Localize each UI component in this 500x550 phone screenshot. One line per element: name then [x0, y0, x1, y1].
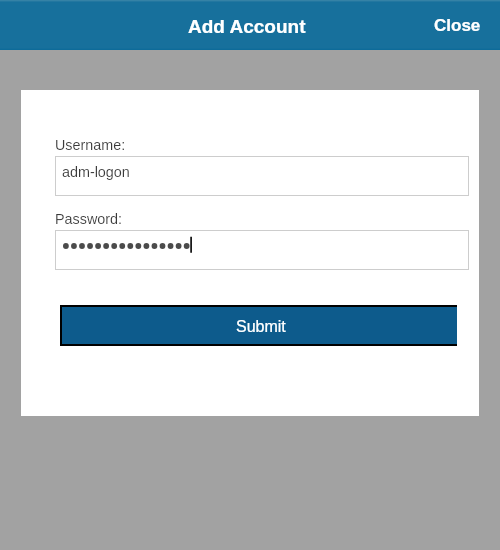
- button[interactable]: adm-logon: [55, 156, 469, 196]
- staticText: adm-logon: [62, 164, 130, 180]
- button[interactable]: Close: [423, 7, 491, 43]
- staticText: Add Account: [188, 16, 306, 37]
- staticText: Username:: [55, 137, 126, 153]
- staticText: Password:: [55, 211, 122, 227]
- button[interactable]: Submit: [60, 305, 457, 346]
- button[interactable]: [55, 230, 469, 270]
- staticText: Submit: [236, 318, 286, 336]
- staticText: Close: [434, 16, 481, 35]
